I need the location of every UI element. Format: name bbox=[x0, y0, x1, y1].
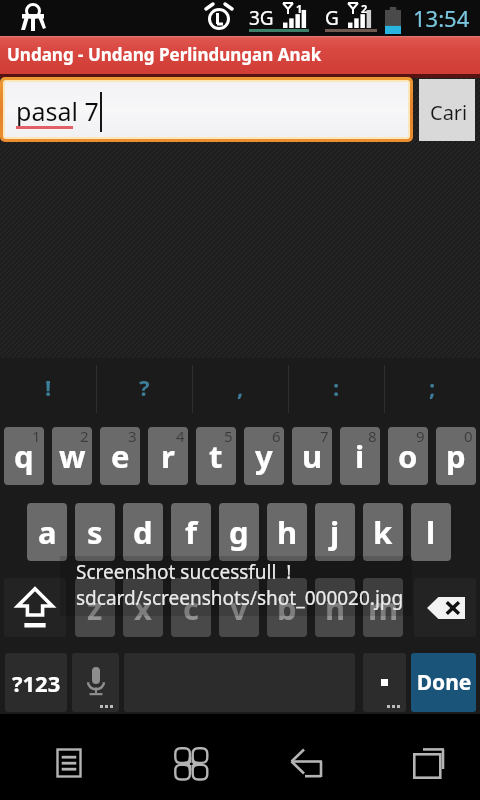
staticText: pasal bbox=[16, 94, 78, 128]
button[interactable]: w bbox=[52, 427, 92, 485]
button[interactable]: p bbox=[436, 427, 476, 485]
button[interactable]: ? bbox=[96, 358, 192, 420]
staticText: c bbox=[183, 587, 199, 629]
staticText: : bbox=[333, 372, 340, 402]
staticText: 7 bbox=[78, 94, 99, 128]
staticText: w bbox=[59, 435, 86, 477]
button[interactable]: g bbox=[219, 503, 259, 561]
staticText: n bbox=[325, 587, 346, 629]
staticText: j bbox=[330, 511, 340, 553]
button[interactable]: c bbox=[171, 578, 211, 637]
staticText: ?123 bbox=[12, 668, 61, 698]
staticText: o bbox=[398, 435, 418, 477]
button[interactable]: j bbox=[315, 503, 355, 561]
button[interactable]: Shift bbox=[4, 578, 66, 637]
button[interactable]: z bbox=[75, 578, 115, 637]
button[interactable]: b bbox=[267, 578, 307, 637]
staticText: t bbox=[209, 435, 223, 477]
button[interactable]: Recent apps bbox=[369, 714, 480, 800]
button[interactable]: i bbox=[340, 427, 380, 485]
button[interactable]: Delete bbox=[414, 578, 476, 637]
button[interactable]: : bbox=[288, 358, 384, 420]
staticText: e bbox=[111, 435, 130, 477]
button[interactable]: t bbox=[196, 427, 236, 485]
button[interactable]: h bbox=[267, 503, 307, 561]
staticText: s bbox=[87, 511, 103, 553]
staticText: 2 bbox=[361, 1, 368, 15]
button[interactable]: Back bbox=[246, 714, 366, 800]
staticText: l bbox=[426, 511, 436, 553]
staticText: 2 bbox=[80, 427, 89, 446]
button[interactable]: q bbox=[4, 427, 44, 485]
staticText: z bbox=[87, 587, 103, 629]
staticText: g bbox=[229, 511, 249, 553]
staticText: m bbox=[368, 587, 399, 629]
staticText: 13:54 bbox=[413, 3, 470, 33]
button[interactable]: n bbox=[315, 578, 355, 637]
staticText: Cari bbox=[430, 99, 468, 126]
button[interactable]: , bbox=[192, 358, 288, 420]
staticText: Undang - Undang Perlindungan Anak bbox=[7, 43, 322, 66]
button[interactable]: ; bbox=[384, 358, 480, 420]
button[interactable]: m bbox=[363, 578, 403, 637]
staticText: 1 bbox=[32, 427, 41, 446]
button[interactable]: o bbox=[388, 427, 428, 485]
staticText: Done bbox=[416, 668, 472, 697]
staticText: sdcard/screenshots/shot_000020.jpg bbox=[76, 585, 404, 611]
staticText: ? bbox=[139, 372, 150, 402]
staticText: d bbox=[133, 511, 153, 553]
button[interactable]: Home bbox=[130, 714, 250, 800]
button[interactable]: y bbox=[244, 427, 284, 485]
button[interactable]: f bbox=[171, 503, 211, 561]
button[interactable]: pasal bbox=[0, 77, 413, 142]
button[interactable]: u bbox=[292, 427, 332, 485]
button[interactable]: s bbox=[75, 503, 115, 561]
button[interactable]: a bbox=[27, 503, 67, 561]
staticText: b bbox=[277, 587, 297, 629]
staticText: 7 bbox=[320, 427, 329, 446]
staticText: 4 bbox=[176, 427, 185, 446]
staticText: ; bbox=[429, 372, 436, 402]
button[interactable]: d bbox=[123, 503, 163, 561]
staticText: Screenshot successfull ! bbox=[76, 559, 292, 585]
button[interactable]: ! bbox=[0, 358, 96, 420]
staticText: 0 bbox=[464, 427, 473, 446]
staticText: G bbox=[325, 5, 339, 31]
staticText: 3G bbox=[249, 5, 274, 31]
staticText: h bbox=[277, 511, 298, 553]
staticText: , bbox=[237, 372, 244, 402]
staticText: v bbox=[230, 587, 248, 629]
staticText: 8 bbox=[368, 427, 377, 446]
staticText: i bbox=[355, 435, 365, 477]
staticText: f bbox=[185, 511, 197, 553]
button[interactable]: x bbox=[123, 578, 163, 637]
staticText: p bbox=[446, 435, 466, 477]
button[interactable]: Done bbox=[411, 653, 476, 712]
button[interactable]: r bbox=[148, 427, 188, 485]
staticText: x bbox=[134, 587, 152, 629]
button[interactable]: v bbox=[219, 578, 259, 637]
button[interactable]: Cari bbox=[419, 79, 475, 141]
staticText: 1 bbox=[296, 1, 303, 15]
staticText: ! bbox=[45, 372, 52, 402]
button[interactable]: l bbox=[411, 503, 451, 561]
staticText: 9 bbox=[416, 427, 425, 446]
button[interactable]: Symbols bbox=[5, 653, 67, 712]
staticText: 5 bbox=[224, 427, 233, 446]
staticText: k bbox=[373, 511, 393, 553]
staticText: 6 bbox=[272, 427, 281, 446]
staticText: u bbox=[302, 435, 323, 477]
staticText: y bbox=[255, 435, 273, 477]
button[interactable]: k bbox=[363, 503, 403, 561]
button[interactable]: Voice input bbox=[72, 653, 119, 712]
staticText: 3 bbox=[128, 427, 137, 446]
staticText: a bbox=[38, 511, 57, 553]
button[interactable]: Period bbox=[363, 653, 406, 712]
staticText: q bbox=[14, 435, 34, 477]
button[interactable]: Menu bbox=[9, 714, 129, 800]
staticText: r bbox=[161, 435, 175, 477]
button[interactable]: e bbox=[100, 427, 140, 485]
